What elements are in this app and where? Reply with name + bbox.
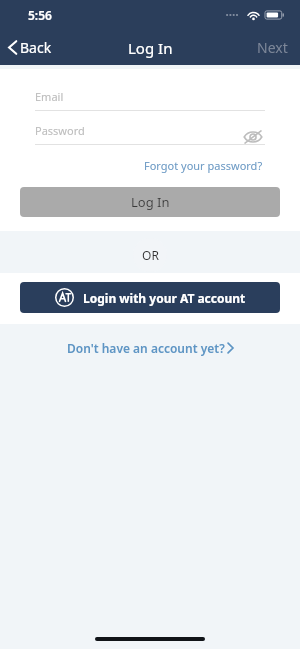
staticText: Login with your AT account	[83, 290, 246, 306]
button[interactable]: Log In	[20, 187, 280, 217]
staticText: Log In	[128, 38, 173, 58]
staticText: Don't have an account yet?	[67, 340, 225, 356]
staticText: Log In	[131, 193, 170, 211]
staticText: Email	[35, 89, 64, 104]
staticText: Forgot your password?	[144, 158, 263, 173]
button[interactable]: Show password	[241, 125, 265, 149]
staticText: 5:56	[28, 7, 52, 23]
staticText: Next	[257, 38, 288, 57]
staticText: OR	[142, 247, 159, 263]
button[interactable]: Email	[0, 83, 300, 110]
button[interactable]: Next	[245, 32, 300, 63]
button[interactable]: Don't have an account yet?	[57, 335, 244, 361]
staticText: Back	[20, 38, 52, 57]
button[interactable]: Login with your AT account	[20, 282, 280, 313]
button[interactable]: Forgot your password?	[140, 154, 267, 177]
staticText: Password	[35, 123, 85, 138]
button[interactable]: Back	[0, 34, 62, 61]
